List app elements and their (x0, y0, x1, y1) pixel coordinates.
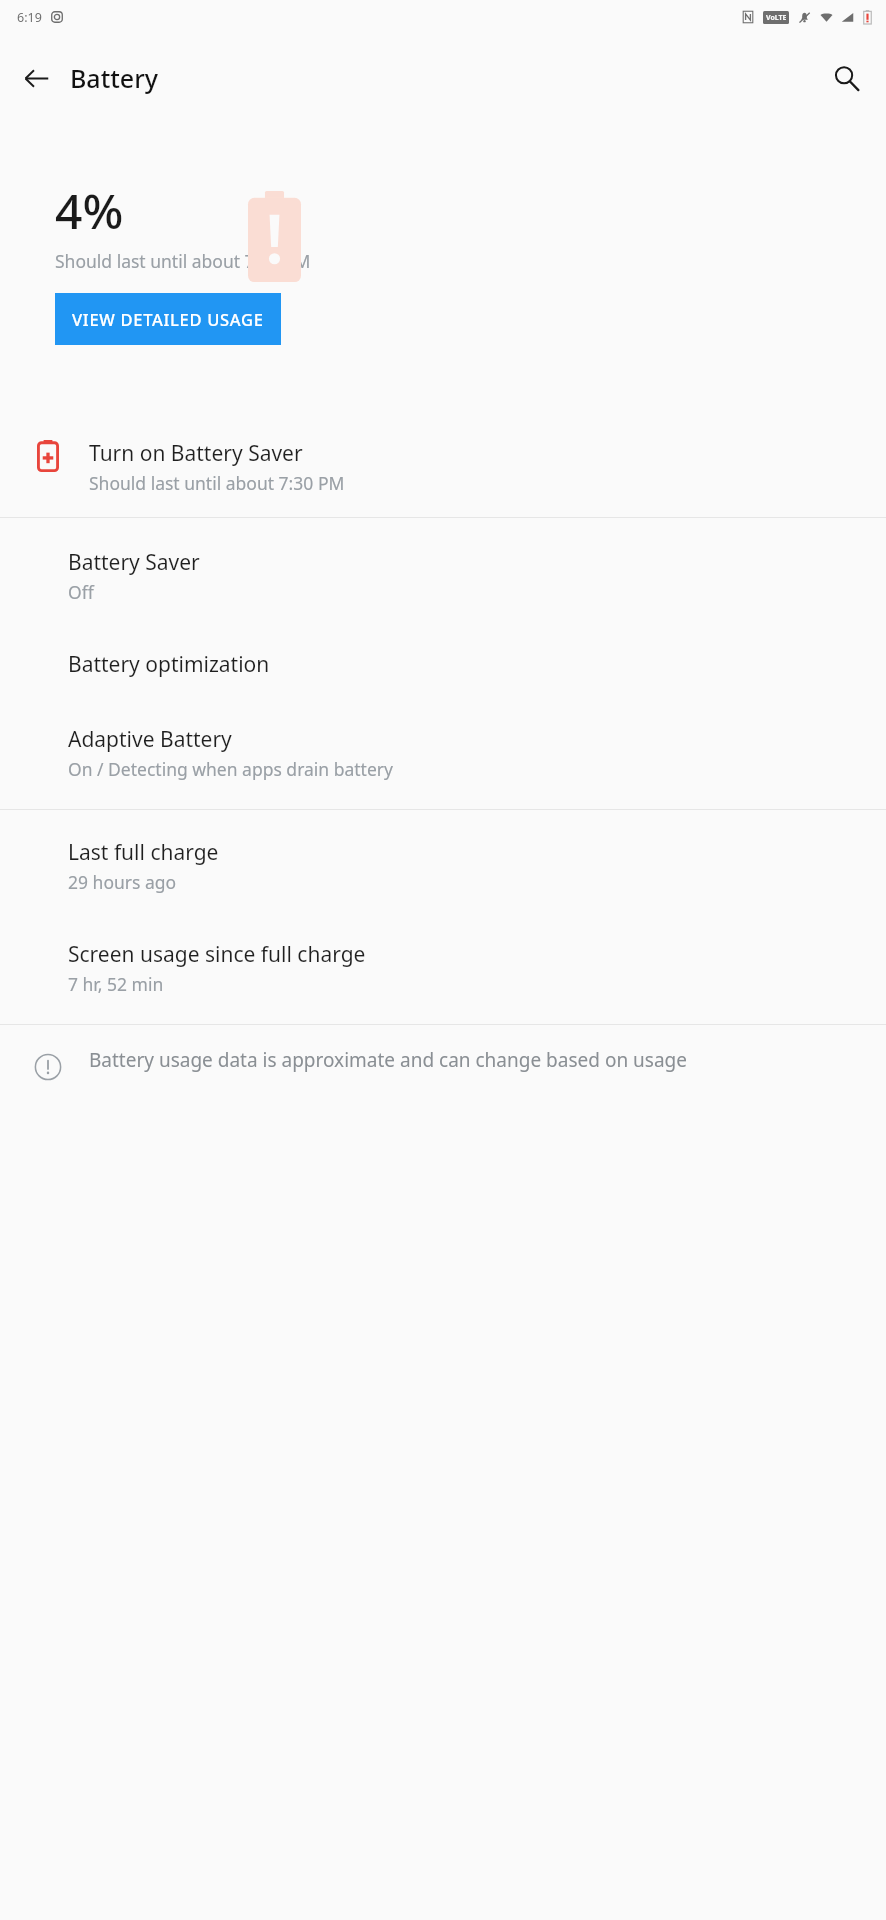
button[interactable]: Adaptive Battery (0, 703, 886, 809)
staticText: Should last until about 7:30 PM (55, 249, 311, 273)
staticText: 29 hours ago (68, 870, 177, 894)
staticText: On / Detecting when apps drain battery (68, 757, 393, 781)
button[interactable]: Battery optimization (0, 626, 886, 703)
button[interactable]: Screen usage since full charge (0, 916, 886, 1024)
button[interactable]: Battery Saver (0, 518, 886, 626)
button[interactable]: Turn on Battery Saver (0, 422, 886, 517)
staticText: Adaptive Battery (68, 725, 232, 754)
staticText: 4% (55, 178, 124, 243)
staticText: 6:19 (17, 9, 42, 26)
button[interactable]: Search (820, 52, 872, 104)
staticText: Last full charge (68, 838, 219, 867)
staticText: 7 hr, 52 min (68, 972, 164, 996)
staticText: Battery (70, 61, 158, 95)
staticText: VIEW DETAILED USAGE (72, 308, 264, 330)
button[interactable]: VIEW DETAILED USAGE (55, 293, 281, 345)
staticText: Battery optimization (68, 650, 270, 679)
staticText: Battery usage data is approximate and ca… (89, 1047, 687, 1073)
staticText: Screen usage since full charge (68, 940, 366, 969)
button[interactable]: Last full charge (0, 810, 886, 916)
staticText: VoLTE (766, 13, 787, 23)
staticText: Off (68, 580, 94, 604)
staticText: Turn on Battery Saver (89, 439, 303, 468)
button[interactable]: Back (10, 52, 62, 104)
staticText: Should last until about 7:30 PM (89, 471, 345, 495)
staticText: Battery Saver (68, 548, 200, 577)
